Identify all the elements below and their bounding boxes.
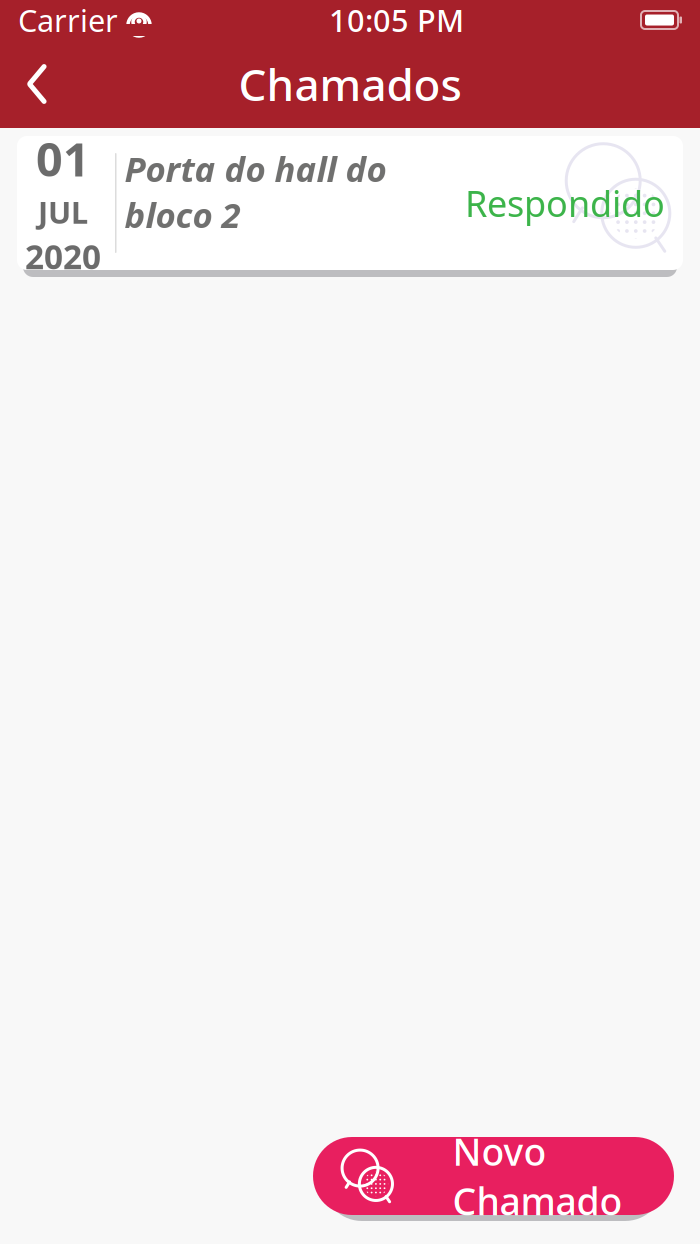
staticText: JUL <box>38 191 88 232</box>
staticText: 10:05 PM <box>329 0 464 40</box>
staticText: 2020 <box>25 234 101 278</box>
button[interactable]: Novo Chamado <box>313 1137 674 1215</box>
button[interactable]: Back <box>8 52 66 116</box>
staticText: 01 <box>36 127 90 189</box>
staticText: Chamados <box>238 55 461 113</box>
staticText: Carrier <box>18 0 118 40</box>
staticText: Novo Chamado <box>452 1126 622 1226</box>
button[interactable]: 01 <box>17 136 683 270</box>
staticText: Respondido <box>465 179 665 227</box>
staticText: Porta do hall do bloco 2 <box>124 145 386 238</box>
